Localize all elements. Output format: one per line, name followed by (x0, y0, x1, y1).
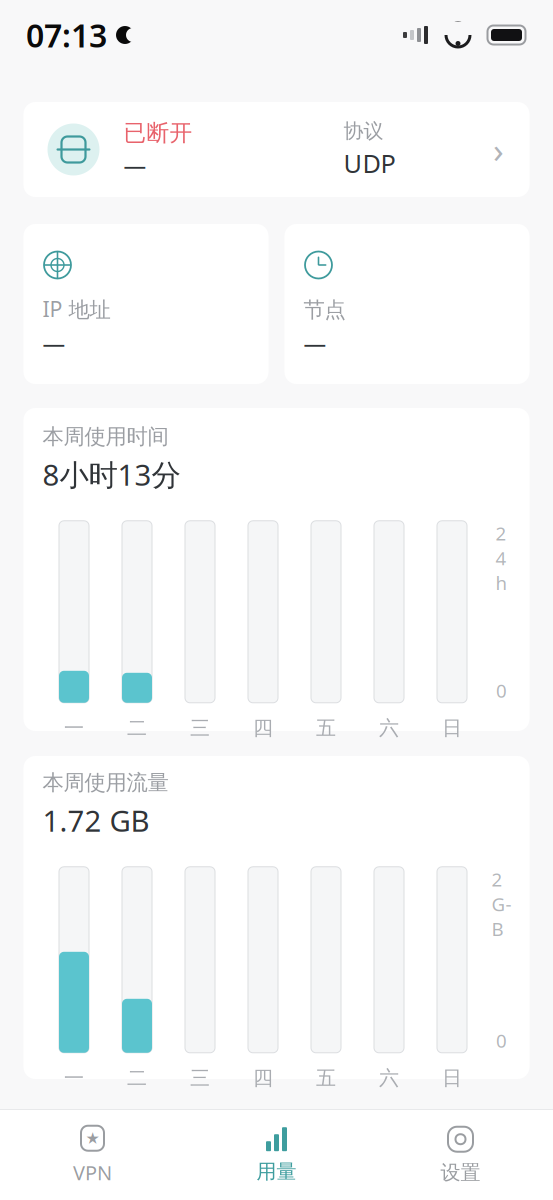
staticText: 设置 (440, 1160, 480, 1185)
staticText: 本周使用流量 (42, 770, 168, 796)
button[interactable]: 用量 (184, 1110, 368, 1200)
button[interactable]: 设置 (368, 1110, 552, 1200)
staticText: 三 (190, 716, 210, 740)
button[interactable]: 已断开 (23, 102, 529, 197)
staticText: 协议 (343, 119, 383, 143)
staticText: 四 (253, 716, 273, 740)
staticText: 用量 (256, 1159, 296, 1184)
staticText: 日 (442, 1066, 462, 1090)
staticText: UDP (343, 146, 395, 180)
staticText: › (493, 126, 504, 172)
staticText: — (42, 328, 65, 358)
staticText: 本周使用时间 (42, 424, 168, 450)
staticText: 四 (253, 1066, 273, 1090)
staticText: 07:13 (26, 14, 107, 56)
staticText: 一 (64, 716, 84, 740)
staticText: 8小时13分 (42, 455, 180, 494)
staticText: 三 (190, 1066, 210, 1090)
staticText: 二 (127, 1066, 147, 1090)
staticText: 0 (496, 678, 507, 703)
staticText: — (303, 328, 326, 358)
staticText: 1.72 GB (42, 801, 149, 840)
staticText: 2 GB (491, 867, 511, 941)
staticText: 六 (379, 1066, 399, 1090)
staticText: ★ (85, 1129, 99, 1147)
staticText: VPN (73, 1159, 112, 1186)
staticText: 已断开 (123, 119, 192, 147)
button[interactable]: ★ (0, 1110, 184, 1200)
staticText: 节点 (303, 297, 345, 323)
staticText: 二 (127, 716, 147, 740)
staticText: 一 (64, 1066, 84, 1090)
staticText: 五 (316, 1066, 336, 1090)
staticText: 日 (442, 716, 462, 740)
staticText: IP 地址 (42, 294, 110, 323)
staticText: 24 h (495, 521, 507, 595)
staticText: 0 (496, 1028, 507, 1053)
staticText: — (123, 150, 146, 180)
staticText: 六 (379, 716, 399, 740)
staticText: 五 (316, 716, 336, 740)
